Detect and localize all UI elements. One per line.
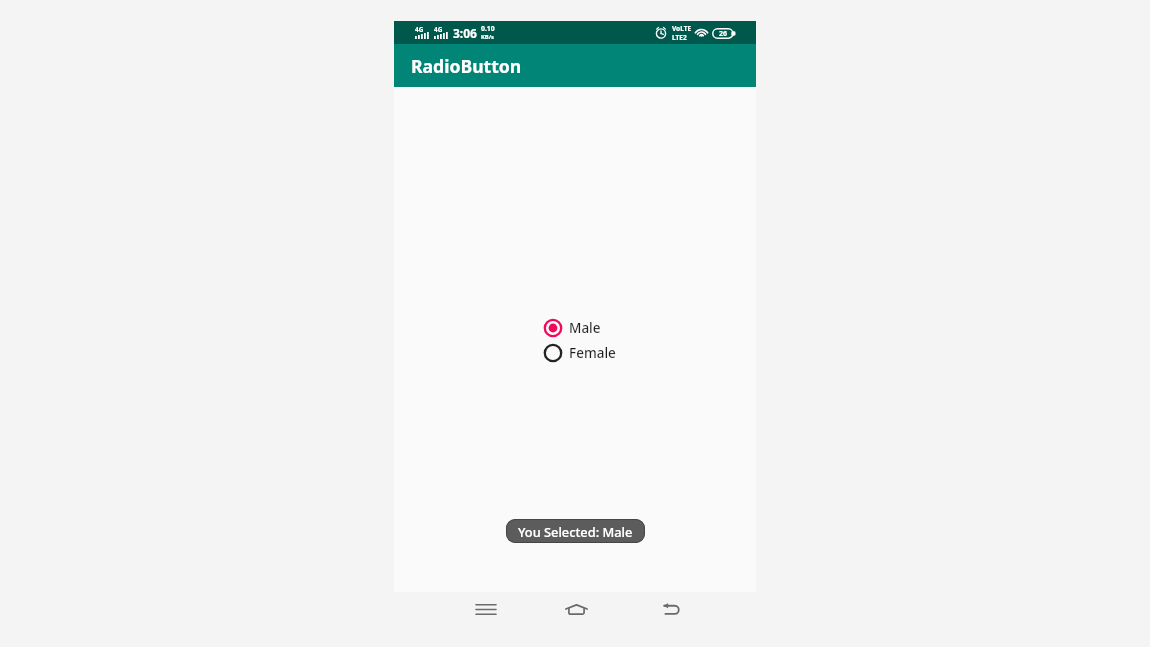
staticText: 3:06 [453, 25, 477, 41]
staticText: 26 [719, 29, 728, 39]
staticText: KB/s [481, 33, 495, 41]
staticText: VoLTE [672, 24, 692, 33]
staticText: RadioButton [411, 54, 522, 78]
staticText: You Selected: Male [518, 523, 633, 540]
button[interactable]: Back [649, 589, 693, 629]
button[interactable]: Female [542, 340, 616, 365]
staticText: 4G [434, 25, 443, 34]
staticText: 0.10 [481, 24, 495, 33]
button[interactable]: Recent apps [464, 589, 508, 629]
staticText: 4G [415, 25, 424, 34]
staticText: Male [569, 319, 601, 337]
button[interactable]: Home [554, 589, 598, 629]
staticText: Female [569, 344, 616, 362]
button[interactable]: You Selected: Male [506, 519, 645, 543]
staticText: LTE2 [672, 33, 687, 42]
button[interactable]: Male [542, 315, 601, 340]
